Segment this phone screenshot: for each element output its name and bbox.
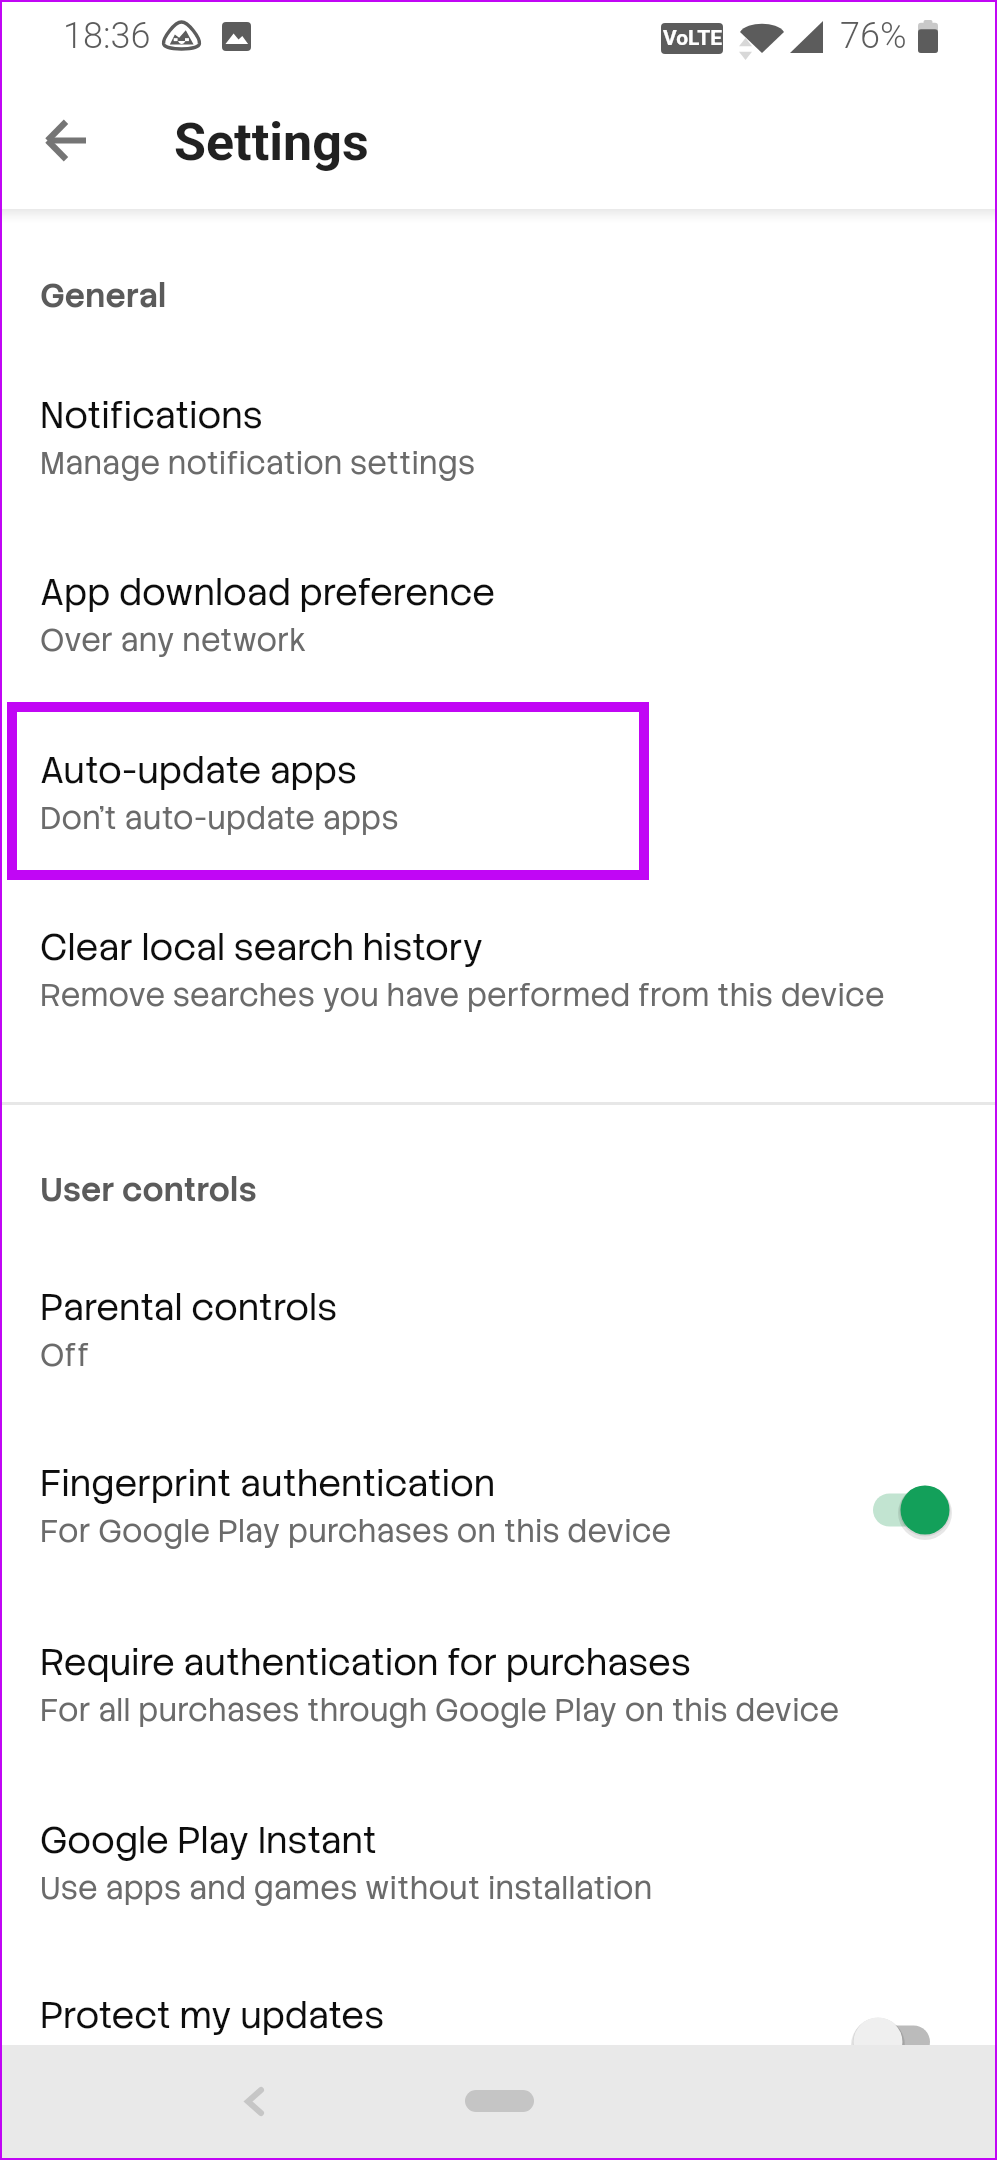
button[interactable]: Switch on (872, 1462, 977, 1550)
staticText: Fingerprint authentication (40, 1460, 496, 1507)
button[interactable]: Notifications (0, 392, 997, 524)
staticText: Require authentication for purchases (40, 1639, 691, 1686)
button[interactable]: Navigate up (2, 81, 130, 200)
button[interactable]: Require authentication for purchases (0, 1592, 997, 1771)
button[interactable]: Protect my updates (0, 1949, 997, 2124)
staticText: Protect my updates (40, 1992, 385, 2039)
staticText: Over any network (40, 620, 307, 660)
button[interactable]: Parental controls (0, 1284, 997, 1415)
staticText: 76% (840, 15, 907, 57)
staticText: VoLTE (663, 26, 722, 51)
staticText: Settings (174, 112, 369, 173)
button[interactable]: App download preference (0, 524, 997, 701)
staticText: Off (40, 1335, 90, 1375)
staticText: App download preference (40, 569, 495, 616)
staticText: Clear local search history (40, 924, 484, 971)
button[interactable]: Auto-update apps (0, 701, 997, 879)
staticText: Notifications (40, 392, 263, 439)
button[interactable]: Back (214, 2061, 294, 2141)
staticText: Don't auto-update apps (40, 798, 399, 838)
staticText: Remove searches you have performed from … (40, 975, 885, 1015)
staticText: Parental controls (40, 1284, 338, 1331)
staticText: Auto-update apps (40, 747, 357, 794)
staticText: User controls (40, 1168, 257, 1211)
button[interactable]: Clear local search history (0, 879, 997, 1015)
button[interactable]: Switch off (872, 1994, 977, 2082)
staticText: Get the newest features (40, 2043, 409, 2083)
staticText: Use apps and games without installation (40, 1868, 653, 1908)
staticText: General (40, 274, 167, 317)
staticText: Manage notification settings (40, 443, 476, 483)
button[interactable]: Fingerprint authentication (0, 1415, 997, 1592)
staticText: 18:36 (63, 15, 151, 57)
staticText: For all purchases through Google Play on… (40, 1690, 840, 1730)
staticText: Google Play Instant (40, 1817, 377, 1864)
button[interactable]: Google Play Instant (0, 1771, 997, 1949)
staticText: For Google Play purchases on this device (40, 1511, 672, 1551)
button[interactable]: Home (465, 2090, 534, 2112)
